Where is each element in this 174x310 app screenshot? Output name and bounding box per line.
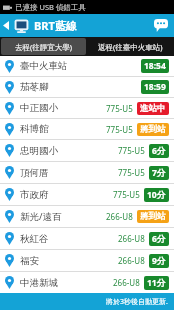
staticText: 6分: [152, 233, 166, 245]
button[interactable]: 中正國小: [0, 98, 174, 118]
staticText: 7分: [152, 167, 166, 179]
staticText: 775-U5: [113, 189, 140, 200]
staticText: 中港新城: [20, 277, 58, 289]
staticText: 福安: [20, 255, 39, 267]
staticText: 秋紅谷: [20, 233, 49, 245]
button[interactable]: 新光/遠百: [0, 206, 174, 227]
staticText: 266-U8: [118, 255, 145, 266]
button[interactable]: 茄苳腳: [0, 77, 174, 97]
staticText: 10分: [147, 189, 166, 201]
button[interactable]: 頂何厝: [0, 162, 174, 183]
staticText: 6分: [152, 145, 166, 157]
staticText: 市政府: [20, 189, 49, 201]
staticText: 忠明國小: [20, 145, 58, 157]
staticText: 775-U5: [106, 103, 133, 114]
staticText: 18:59: [144, 81, 166, 93]
staticText: 進站中: [140, 103, 166, 114]
staticText: 將於3秒後自動更新.: [106, 297, 168, 307]
staticText: 中正國小: [20, 102, 58, 114]
button[interactable]: Back: [0, 14, 12, 37]
staticText: 18:54: [144, 60, 166, 72]
staticText: 新光/遠百: [20, 210, 62, 223]
staticText: 11分: [147, 277, 166, 289]
staticText: 9分: [152, 255, 166, 267]
staticText: 775-U5: [118, 167, 145, 178]
staticText: 返程(往臺中火車站): [98, 42, 163, 52]
staticText: 266-U8: [106, 211, 133, 222]
staticText: 266-U8: [118, 233, 145, 244]
button[interactable]: 秋紅谷: [0, 228, 174, 249]
button[interactable]: 市政府: [0, 184, 174, 205]
staticText: 臺中火車站: [20, 60, 68, 72]
staticText: 茄苳腳: [20, 81, 49, 93]
button[interactable]: 科博館: [0, 119, 174, 139]
button[interactable]: 臺中火車站: [0, 56, 174, 76]
button[interactable]: 返程(往臺中火車站): [87, 37, 174, 56]
staticText: 775-U5: [106, 124, 133, 135]
staticText: 775-U5: [118, 145, 145, 156]
staticText: 266-U8: [113, 277, 140, 288]
staticText: 頂何厝: [20, 167, 49, 179]
button[interactable]: 去程(往靜宜大學): [1, 38, 86, 55]
staticText: 科博館: [20, 123, 49, 135]
button[interactable]: 福安: [0, 250, 174, 271]
staticText: 已連接 USB 偵錯工具: [15, 2, 86, 12]
button[interactable]: 忠明國小: [0, 140, 174, 161]
staticText: 去程(往靜宜大學): [15, 42, 72, 52]
staticText: BRT藍線: [34, 18, 77, 33]
staticText: 將到站: [140, 124, 166, 135]
staticText: 將到站: [140, 211, 166, 222]
button[interactable]: Messages: [148, 14, 174, 37]
button[interactable]: 中港新城: [0, 272, 174, 293]
